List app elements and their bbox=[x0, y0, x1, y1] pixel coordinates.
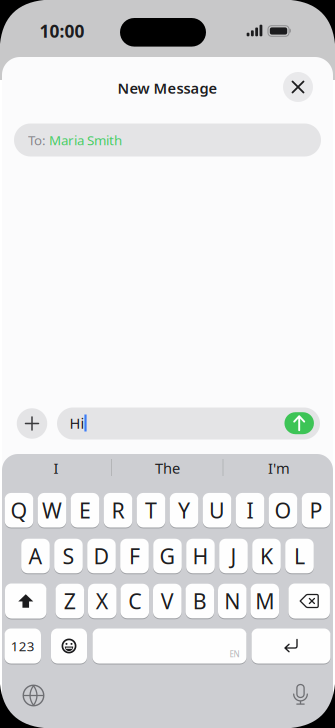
staticText: Hi bbox=[69, 413, 84, 433]
staticText: Q bbox=[10, 496, 27, 524]
staticText: U bbox=[209, 496, 225, 524]
staticText: G bbox=[159, 542, 175, 570]
button[interactable]: T bbox=[137, 493, 165, 527]
button[interactable]: C bbox=[120, 584, 149, 618]
staticText: W bbox=[42, 496, 62, 524]
staticText: P bbox=[309, 496, 322, 524]
staticText: C bbox=[128, 587, 141, 615]
staticText: Z bbox=[64, 587, 76, 615]
staticText: J bbox=[230, 542, 236, 570]
staticText: K bbox=[260, 542, 273, 570]
staticText: Maria Smith bbox=[49, 131, 122, 149]
staticText: I'm bbox=[268, 458, 290, 478]
staticText: N bbox=[224, 587, 240, 615]
staticText: New Message bbox=[117, 78, 217, 98]
button[interactable]: I bbox=[11, 455, 101, 481]
button[interactable]: D bbox=[87, 539, 116, 573]
button[interactable]: O bbox=[269, 493, 297, 527]
button[interactable] bbox=[288, 683, 312, 707]
staticText: R bbox=[111, 496, 124, 524]
staticText: 123 bbox=[11, 637, 35, 655]
button[interactable] bbox=[5, 583, 46, 618]
button[interactable]: J bbox=[219, 539, 248, 573]
staticText: S bbox=[62, 542, 74, 570]
button[interactable]: W bbox=[38, 493, 66, 527]
button[interactable]: E bbox=[71, 493, 99, 527]
button[interactable]: EN bbox=[92, 628, 246, 663]
staticText: A bbox=[28, 542, 42, 570]
button[interactable]: I'm bbox=[234, 455, 324, 481]
button[interactable] bbox=[283, 72, 313, 102]
staticText: E bbox=[79, 496, 91, 524]
staticText: I bbox=[53, 458, 58, 478]
button[interactable]: A bbox=[21, 539, 50, 573]
staticText: I bbox=[246, 496, 253, 524]
button[interactable]: To: bbox=[14, 123, 321, 156]
button[interactable]: 123 bbox=[4, 628, 41, 663]
button[interactable] bbox=[251, 628, 330, 663]
button[interactable]: M bbox=[250, 584, 279, 618]
button[interactable]: N bbox=[218, 584, 247, 618]
button[interactable] bbox=[57, 407, 320, 439]
button[interactable]: R bbox=[104, 493, 132, 527]
button[interactable]: P bbox=[302, 493, 330, 527]
button[interactable]: G bbox=[153, 539, 182, 573]
button[interactable] bbox=[51, 628, 87, 663]
button[interactable]: U bbox=[203, 493, 231, 527]
button[interactable]: S bbox=[54, 539, 83, 573]
staticText: O bbox=[274, 496, 291, 524]
staticText: H bbox=[192, 542, 208, 570]
button[interactable]: H bbox=[186, 539, 215, 573]
staticText: The bbox=[155, 458, 180, 478]
button[interactable]: Q bbox=[5, 493, 33, 527]
staticText: M bbox=[255, 587, 274, 615]
staticText: L bbox=[294, 542, 305, 570]
staticText: Y bbox=[178, 496, 190, 524]
button[interactable]: I bbox=[236, 493, 264, 527]
staticText: V bbox=[161, 587, 174, 615]
staticText: 10:00 bbox=[39, 19, 84, 42]
staticText: EN bbox=[229, 649, 239, 659]
button[interactable]: L bbox=[285, 539, 314, 573]
button[interactable] bbox=[284, 412, 314, 434]
button[interactable]: F bbox=[120, 539, 149, 573]
button[interactable]: Y bbox=[170, 493, 198, 527]
button[interactable]: B bbox=[185, 584, 214, 618]
staticText: D bbox=[93, 542, 109, 570]
staticText: B bbox=[193, 587, 207, 615]
button[interactable]: V bbox=[153, 584, 182, 618]
staticText: To: bbox=[28, 131, 49, 149]
button[interactable]: The bbox=[122, 455, 212, 481]
staticText: T bbox=[145, 496, 157, 524]
button[interactable] bbox=[17, 408, 47, 439]
button[interactable] bbox=[288, 583, 330, 618]
button[interactable]: Z bbox=[55, 584, 84, 618]
button[interactable]: K bbox=[252, 539, 281, 573]
staticText: X bbox=[96, 587, 109, 615]
button[interactable]: X bbox=[88, 584, 117, 618]
button[interactable] bbox=[21, 683, 45, 707]
staticText: F bbox=[129, 542, 140, 570]
